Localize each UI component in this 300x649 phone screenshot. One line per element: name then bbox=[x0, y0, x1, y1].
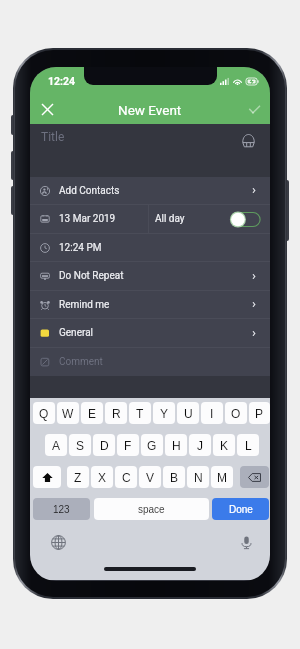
staticText: J bbox=[197, 439, 203, 452]
button[interactable]: V bbox=[139, 466, 161, 488]
staticText: Comment bbox=[59, 356, 103, 368]
button[interactable]: S bbox=[69, 434, 91, 456]
button[interactable]: Done bbox=[212, 498, 269, 520]
staticText: 123 bbox=[53, 504, 70, 515]
button[interactable]: E bbox=[81, 402, 103, 424]
button[interactable]: Birthday bbox=[236, 128, 261, 153]
button[interactable]: 13 Mar 2019 bbox=[30, 205, 148, 233]
button[interactable]: Q bbox=[33, 402, 55, 424]
staticText: M bbox=[217, 471, 227, 484]
button[interactable]: G bbox=[141, 434, 163, 456]
button[interactable]: Save bbox=[238, 95, 270, 124]
button[interactable]: 123 bbox=[33, 498, 90, 520]
staticText: Remind me bbox=[59, 299, 110, 311]
button[interactable]: O bbox=[225, 402, 247, 424]
button[interactable]: P bbox=[249, 402, 270, 424]
staticText: O bbox=[231, 407, 241, 420]
staticText: Q bbox=[39, 407, 49, 420]
staticText: All day bbox=[155, 213, 185, 225]
staticText: General bbox=[59, 327, 94, 339]
staticText: D bbox=[100, 439, 109, 452]
button[interactable]: M bbox=[211, 466, 233, 488]
staticText: P bbox=[255, 407, 264, 420]
staticText: Do Not Repeat bbox=[59, 270, 124, 282]
button[interactable]: J bbox=[189, 434, 211, 456]
staticText: G bbox=[147, 439, 157, 452]
button[interactable]: Change keyboard bbox=[48, 532, 68, 552]
button[interactable]: F bbox=[117, 434, 139, 456]
button[interactable]: Z bbox=[67, 466, 89, 488]
staticText: K bbox=[220, 439, 229, 452]
button[interactable]: D bbox=[93, 434, 115, 456]
staticText: H bbox=[172, 439, 181, 452]
staticText: C bbox=[122, 471, 131, 484]
staticText: W bbox=[62, 407, 74, 420]
button[interactable]: Comment bbox=[30, 348, 270, 376]
staticText: T bbox=[136, 407, 144, 420]
button[interactable]: H bbox=[165, 434, 187, 456]
staticText: B bbox=[170, 471, 179, 484]
staticText: space bbox=[138, 504, 165, 515]
button[interactable]: R bbox=[105, 402, 127, 424]
button[interactable]: General bbox=[30, 319, 270, 347]
button[interactable]: T bbox=[129, 402, 151, 424]
button[interactable]: 12:24 PM bbox=[30, 234, 270, 261]
staticText: Z bbox=[74, 471, 82, 484]
button[interactable]: X bbox=[91, 466, 113, 488]
staticText: I bbox=[210, 407, 214, 420]
staticText: Y bbox=[160, 407, 169, 420]
staticText: New Event bbox=[118, 102, 182, 118]
staticText: F bbox=[124, 439, 132, 452]
button[interactable]: Y bbox=[153, 402, 175, 424]
staticText: V bbox=[146, 471, 155, 484]
staticText: S bbox=[76, 439, 85, 452]
button[interactable]: L bbox=[237, 434, 259, 456]
staticText: L bbox=[245, 439, 252, 452]
button[interactable]: U bbox=[177, 402, 199, 424]
button[interactable]: Do Not Repeat bbox=[30, 262, 270, 290]
staticText: A bbox=[52, 439, 61, 452]
button[interactable] bbox=[229, 210, 262, 229]
button[interactable]: Voice input bbox=[236, 532, 256, 552]
button[interactable]: space bbox=[94, 498, 209, 520]
button[interactable]: Add Contacts bbox=[30, 177, 270, 204]
button[interactable]: N bbox=[187, 466, 209, 488]
staticText: U bbox=[184, 407, 193, 420]
button[interactable]: B bbox=[163, 466, 185, 488]
staticText: Add Contacts bbox=[59, 185, 120, 197]
button[interactable]: K bbox=[213, 434, 235, 456]
staticText: R bbox=[112, 407, 121, 420]
button[interactable]: A bbox=[45, 434, 67, 456]
button[interactable]: Shift bbox=[33, 466, 61, 488]
button[interactable]: Remind me bbox=[30, 291, 270, 318]
staticText: 12:24 bbox=[48, 75, 76, 87]
button[interactable]: Close bbox=[30, 95, 64, 124]
button[interactable]: I bbox=[201, 402, 223, 424]
button[interactable]: Backspace bbox=[240, 466, 269, 488]
staticText: 13 Mar 2019 bbox=[59, 213, 116, 225]
staticText: Title bbox=[41, 130, 65, 144]
button[interactable]: All day bbox=[149, 205, 270, 233]
staticText: Done bbox=[229, 504, 253, 515]
staticText: E bbox=[88, 407, 97, 420]
button[interactable]: C bbox=[115, 466, 137, 488]
staticText: X bbox=[98, 471, 107, 484]
staticText: 12:24 PM bbox=[59, 242, 102, 254]
staticText: N bbox=[194, 471, 203, 484]
button[interactable]: W bbox=[57, 402, 79, 424]
